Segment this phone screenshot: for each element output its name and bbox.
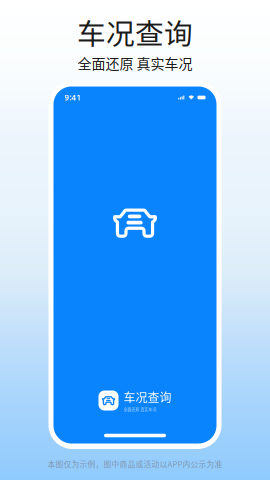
staticText: 车况查询 bbox=[123, 388, 171, 406]
staticText: 9:41 bbox=[64, 92, 81, 103]
staticText: 全面还原 真实车况 bbox=[123, 407, 156, 413]
staticText: 全面还原 真实车况 bbox=[77, 53, 192, 73]
staticText: 车况查询 bbox=[77, 11, 193, 53]
staticText: 本图仅为示例，图中商品或活动以APP内公示为准 bbox=[47, 458, 222, 470]
